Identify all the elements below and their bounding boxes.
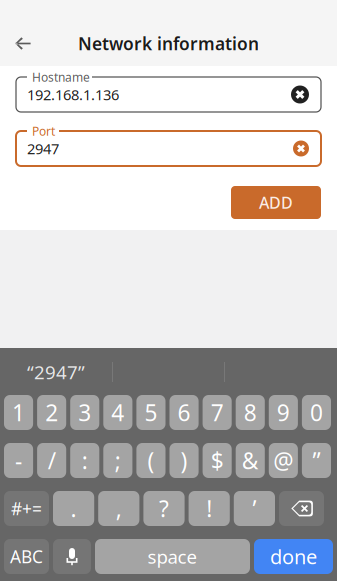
button[interactable]: ADD bbox=[231, 186, 321, 219]
staticText: Network information bbox=[78, 32, 259, 55]
button[interactable]: 3 bbox=[70, 395, 99, 430]
staticText: 0 bbox=[310, 397, 323, 427]
staticText: @ bbox=[273, 445, 293, 475]
button[interactable]: Back bbox=[2, 21, 46, 66]
staticText: / bbox=[48, 445, 56, 475]
button[interactable]: ) bbox=[169, 443, 199, 478]
staticText: 5 bbox=[144, 397, 157, 427]
staticText: ( bbox=[147, 445, 154, 475]
button[interactable]: - bbox=[4, 443, 33, 478]
staticText: ” bbox=[312, 445, 320, 475]
button[interactable]: done bbox=[254, 539, 333, 574]
button[interactable]: 2 bbox=[37, 395, 66, 430]
button[interactable]: 9 bbox=[269, 395, 298, 430]
staticText: 2 bbox=[45, 397, 58, 427]
staticText: : bbox=[82, 445, 88, 475]
staticText: 3 bbox=[78, 397, 91, 427]
staticText: , bbox=[116, 493, 122, 523]
staticText: 2947 bbox=[27, 139, 59, 158]
button[interactable]: Backspace bbox=[279, 491, 324, 526]
button[interactable]: 7 bbox=[203, 395, 232, 430]
staticText: 7 bbox=[211, 397, 224, 427]
staticText: space bbox=[147, 544, 197, 569]
staticText: 4 bbox=[111, 397, 124, 427]
button[interactable]: Voice input bbox=[53, 539, 91, 574]
staticText: “2947” bbox=[27, 360, 85, 384]
button[interactable]: ” bbox=[302, 443, 331, 478]
staticText: 192.168.1.136 bbox=[27, 85, 119, 104]
button[interactable]: / bbox=[37, 443, 66, 478]
staticText: ABC bbox=[10, 545, 43, 568]
button[interactable]: 8 bbox=[236, 395, 265, 430]
staticText: #+= bbox=[11, 497, 42, 520]
staticText: $ bbox=[211, 445, 224, 475]
staticText: ) bbox=[181, 445, 188, 475]
button[interactable]: & bbox=[236, 443, 265, 478]
button[interactable]: $ bbox=[203, 443, 232, 478]
staticText: ADD bbox=[259, 192, 293, 213]
button[interactable]: Clear Port bbox=[290, 137, 312, 159]
staticText: - bbox=[15, 445, 22, 475]
button[interactable]: , bbox=[98, 491, 139, 526]
staticText: 1 bbox=[12, 397, 25, 427]
staticText: 6 bbox=[178, 397, 191, 427]
button[interactable]: ! bbox=[189, 491, 230, 526]
staticText: ! bbox=[206, 493, 212, 523]
button[interactable]: 6 bbox=[169, 395, 199, 430]
button[interactable]: ’ bbox=[234, 491, 275, 526]
button[interactable]: ABC bbox=[4, 539, 49, 574]
button[interactable]: #+= bbox=[4, 491, 49, 526]
staticText: ’ bbox=[252, 493, 256, 523]
staticText: ; bbox=[115, 445, 121, 475]
staticText: done bbox=[270, 543, 317, 570]
staticText: Port bbox=[32, 123, 55, 139]
button[interactable]: 4 bbox=[103, 395, 132, 430]
staticText: & bbox=[242, 445, 259, 475]
button[interactable]: space bbox=[95, 539, 250, 574]
button[interactable]: 5 bbox=[136, 395, 165, 430]
button[interactable]: ( bbox=[136, 443, 165, 478]
button[interactable]: ; bbox=[103, 443, 132, 478]
button[interactable]: ? bbox=[143, 491, 185, 526]
button[interactable]: @ bbox=[269, 443, 298, 478]
staticText: ? bbox=[159, 493, 169, 523]
button[interactable]: Clear Hostname bbox=[288, 82, 312, 106]
button[interactable]: . bbox=[53, 491, 94, 526]
button[interactable]: 1 bbox=[4, 395, 33, 430]
staticText: 8 bbox=[244, 397, 257, 427]
staticText: . bbox=[71, 493, 77, 523]
staticText: 9 bbox=[277, 397, 290, 427]
button[interactable]: : bbox=[70, 443, 99, 478]
staticText: Hostname bbox=[32, 69, 90, 85]
button[interactable]: 0 bbox=[302, 395, 331, 430]
